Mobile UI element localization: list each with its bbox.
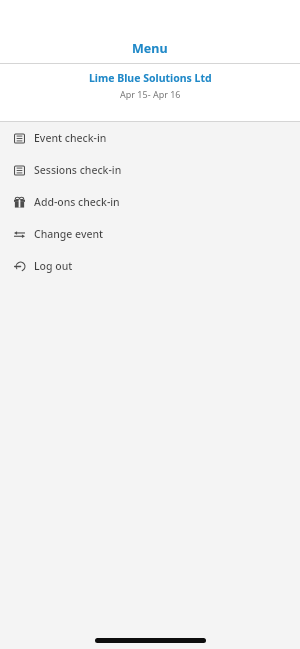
button[interactable]: Event check-in	[0, 122, 300, 154]
staticText: Add-ons check-in	[34, 195, 120, 209]
staticText: Apr 15- Apr 16	[120, 88, 181, 100]
staticText: Change event	[34, 227, 104, 241]
staticText: Sessions check-in	[34, 163, 122, 177]
button[interactable]: Add-ons check-in	[0, 186, 300, 218]
staticText: Menu	[132, 40, 168, 57]
button[interactable]: Log out	[0, 250, 300, 282]
button[interactable]: Change event	[0, 218, 300, 250]
staticText: Log out	[34, 259, 73, 273]
staticText: Event check-in	[34, 131, 107, 145]
staticText: Lime Blue Solutions Ltd	[89, 71, 212, 85]
button[interactable]: Sessions check-in	[0, 154, 300, 186]
